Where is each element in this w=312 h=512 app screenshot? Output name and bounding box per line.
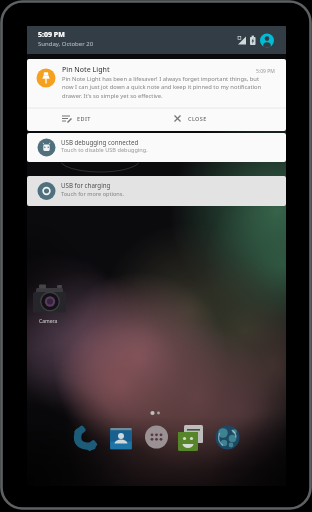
- staticText: 5:09 PM: [38, 30, 65, 40]
- button[interactable]: Pin Note Light: [27, 59, 286, 131]
- staticText: Sunday, October 20: [38, 40, 94, 48]
- button[interactable]: [144, 425, 169, 450]
- staticText: Pin Note Light has been a lifesaver! I a…: [62, 75, 282, 83]
- button[interactable]: [178, 424, 205, 453]
- staticText: USB debugging connected: [61, 138, 139, 146]
- staticText: CLOSE: [188, 115, 207, 122]
- button[interactable]: [72, 425, 98, 452]
- staticText: Touch for more options.: [61, 190, 124, 198]
- staticText: Pin Note Light: [62, 65, 110, 75]
- button[interactable]: CLOSE: [171, 112, 213, 126]
- button[interactable]: 5:09 PM: [27, 26, 286, 54]
- staticText: Camera: [39, 318, 58, 325]
- staticText: drawer. It's so simple yet so effective.: [62, 92, 282, 100]
- staticText: now I can just jot down a quick note and…: [62, 83, 282, 91]
- button[interactable]: USB for charging: [27, 176, 286, 206]
- button[interactable]: [215, 425, 240, 450]
- staticText: 5:09 PM: [256, 68, 275, 75]
- button[interactable]: Camera: [31, 284, 71, 330]
- button[interactable]: [110, 426, 133, 451]
- staticText: Touch to disable USB debugging.: [61, 146, 148, 154]
- staticText: EDIT: [77, 115, 91, 122]
- staticText: USB for charging: [61, 181, 111, 189]
- button[interactable]: USB debugging connected: [27, 133, 286, 162]
- button[interactable]: EDIT: [59, 112, 94, 126]
